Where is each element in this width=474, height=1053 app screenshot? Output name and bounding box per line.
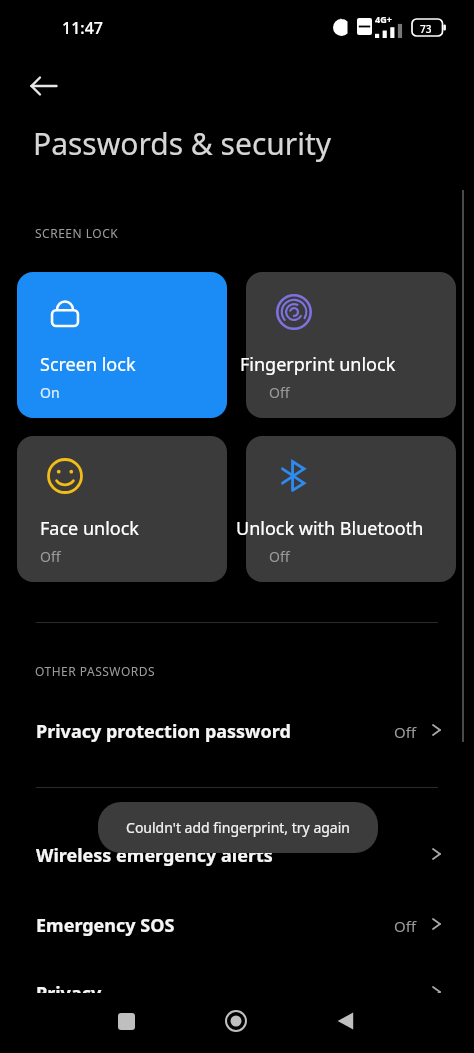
staticText: OTHER PASSWORDS: [35, 663, 156, 679]
staticText: Face unlock: [40, 516, 139, 541]
staticText: Off: [40, 547, 61, 566]
staticText: Off: [269, 383, 290, 402]
staticText: 4G+: [375, 13, 392, 25]
button[interactable]: [0, 830, 474, 882]
staticText: Privacy protection password: [36, 719, 291, 744]
staticText: Off: [394, 722, 417, 742]
staticText: Off: [394, 916, 417, 936]
button[interactable]: Back: [16, 58, 72, 114]
button[interactable]: Home: [208, 993, 264, 1049]
staticText: 11:47: [62, 17, 103, 39]
staticText: Passwords & security: [33, 123, 332, 164]
staticText: 73: [420, 22, 432, 36]
button[interactable]: [17, 436, 227, 582]
button[interactable]: [246, 436, 456, 582]
staticText: Screen lock: [40, 352, 136, 377]
button[interactable]: Recent apps: [98, 993, 154, 1049]
staticText: Wireless emergency alerts: [36, 843, 273, 868]
button[interactable]: [246, 272, 456, 418]
staticText: Emergency SOS: [36, 913, 175, 938]
staticText: Privacy: [36, 981, 102, 1006]
staticText: Off: [269, 547, 290, 566]
button[interactable]: [0, 706, 474, 758]
staticText: Fingerprint unlock: [240, 352, 396, 377]
staticText: Couldn't add fingerprint, try again: [126, 818, 350, 837]
button[interactable]: [0, 900, 474, 952]
button[interactable]: [17, 272, 227, 418]
button[interactable]: [0, 968, 474, 1020]
staticText: SCREEN LOCK: [35, 225, 119, 241]
staticText: Unlock with Bluetooth: [236, 516, 424, 541]
staticText: On: [40, 383, 60, 402]
button[interactable]: Back: [318, 993, 374, 1049]
